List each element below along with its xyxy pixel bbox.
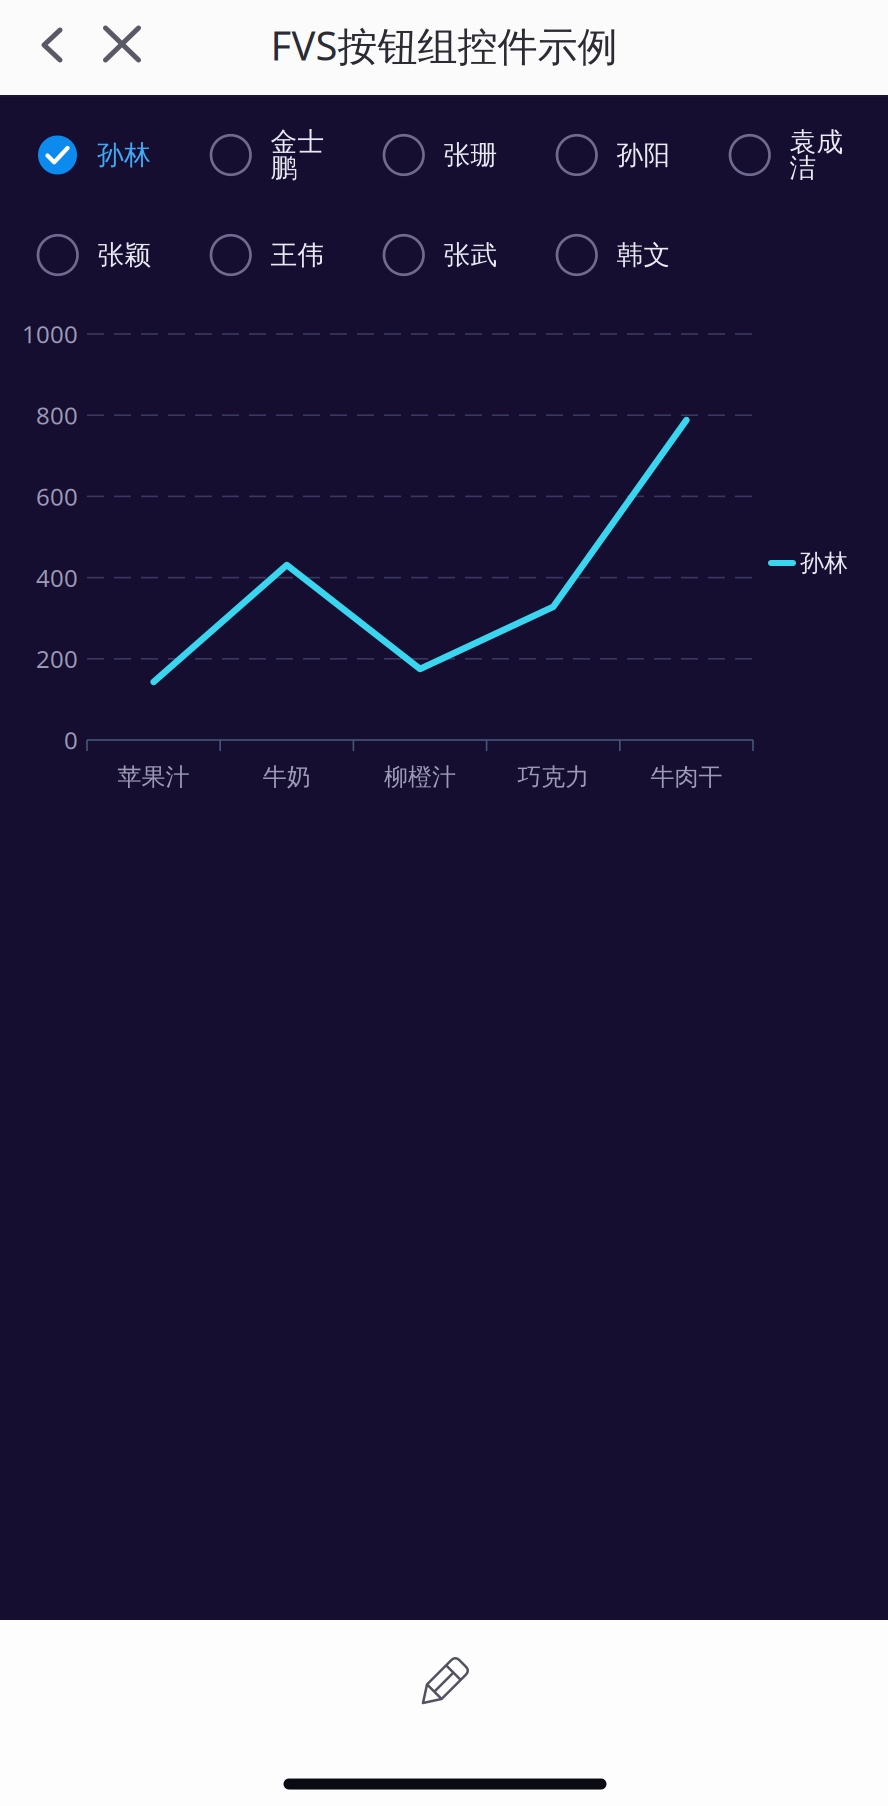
staticText: 牛奶	[263, 762, 311, 792]
button[interactable]: 金士鹏	[211, 105, 361, 205]
button[interactable]: 王伟	[211, 205, 361, 305]
staticText: 巧克力	[517, 762, 589, 792]
staticText: 孙林	[800, 548, 848, 578]
staticText: 袁成洁	[789, 126, 843, 184]
staticText: 0	[64, 724, 78, 756]
staticText: 苹果汁	[118, 762, 190, 792]
staticText: 孙阳	[616, 139, 670, 171]
staticText: 200	[36, 643, 78, 675]
button[interactable]: Back	[22, 13, 82, 77]
staticText: 金士鹏	[270, 126, 324, 184]
button[interactable]: 孙林	[38, 105, 188, 205]
button[interactable]: 韩文	[557, 205, 707, 305]
staticText: 1000	[22, 318, 78, 350]
staticText: 800	[36, 399, 78, 431]
button[interactable]: 张颖	[38, 205, 188, 305]
staticText: 张珊	[443, 139, 497, 171]
staticText: 韩文	[616, 239, 670, 271]
button[interactable]: 张武	[384, 205, 534, 305]
staticText: 张颖	[97, 239, 151, 271]
button[interactable]: Close	[92, 12, 152, 76]
staticText: 孙林	[97, 139, 151, 171]
staticText: 牛肉干	[650, 762, 722, 792]
staticText: 柳橙汁	[384, 762, 456, 792]
staticText: 600	[36, 480, 78, 512]
staticText: 王伟	[270, 239, 324, 271]
button[interactable]: 孙阳	[557, 105, 707, 205]
staticText: FVS按钮组控件示例	[270, 18, 617, 72]
button[interactable]: Edit	[396, 1638, 496, 1722]
staticText: 张武	[443, 239, 497, 271]
button[interactable]: 袁成洁	[730, 105, 880, 205]
staticText: 400	[36, 562, 78, 594]
button[interactable]: 张珊	[384, 105, 534, 205]
